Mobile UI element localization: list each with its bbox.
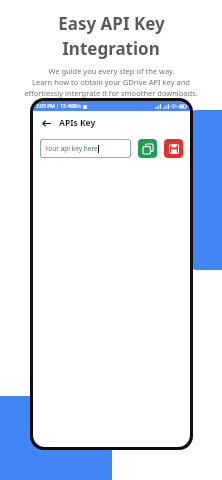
button[interactable]: Save API key	[164, 139, 183, 158]
button[interactable]: Your api key here	[40, 139, 131, 158]
button[interactable]: Copy API key	[138, 139, 157, 158]
staticText: Integration	[62, 37, 160, 60]
staticText: effortlessly intergrate it for smoother …	[24, 88, 198, 98]
staticText: APIs Key	[59, 117, 96, 129]
button[interactable]: Back	[39, 116, 53, 130]
staticText: Learn how to obtain your GDrive API key …	[32, 77, 190, 87]
staticText: 2:03 PM | 13.4KB/s	[36, 103, 81, 110]
staticText: Your api key here	[45, 144, 98, 153]
staticText: Easy API Key	[58, 12, 165, 35]
staticText: We guide you every step of the way.	[48, 66, 175, 76]
